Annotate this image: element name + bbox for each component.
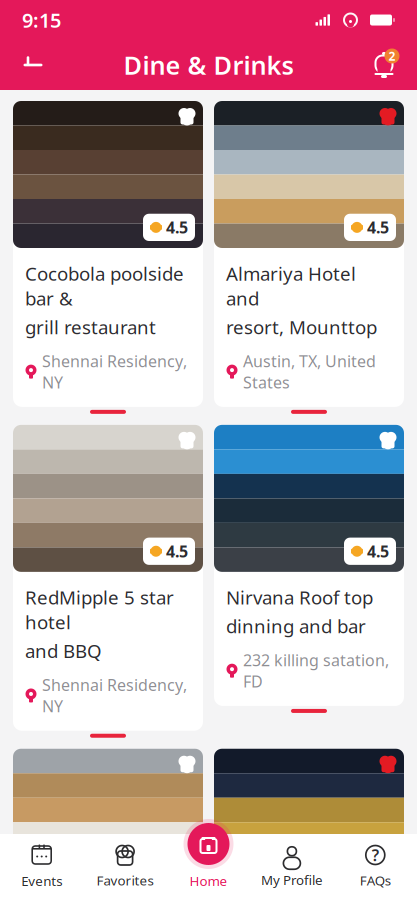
staticText: 2: [388, 48, 395, 64]
staticText: Dine & Drinks: [123, 48, 293, 82]
staticText: 9:15: [22, 7, 61, 33]
staticText: 232 killing satation, FD: [243, 649, 389, 692]
button[interactable]: Add to favorites: [171, 101, 203, 132]
staticText: Shennai Residency, NY: [42, 350, 187, 393]
staticText: Events: [21, 872, 62, 890]
staticText: and BBQ: [25, 638, 102, 663]
button[interactable]: Favorites: [83, 834, 167, 899]
staticText: resort, Mounttop: [226, 315, 377, 339]
staticText: Favorites: [97, 871, 154, 889]
staticText: FAQs: [360, 871, 391, 889]
button[interactable]: Home: [183, 819, 233, 869]
button[interactable]: Add to favorites: [171, 425, 203, 456]
button[interactable]: Add to favorites: [171, 749, 203, 780]
button[interactable]: 4.5: [13, 749, 203, 900]
button[interactable]: 4.5: [214, 749, 404, 900]
button[interactable]: Back: [16, 50, 50, 80]
button[interactable]: 4.5: [214, 101, 404, 407]
staticText: Austin, TX, United States: [243, 350, 376, 393]
button[interactable]: My Profile: [250, 835, 334, 899]
staticText: 4.5: [367, 217, 389, 238]
staticText: 4.5: [166, 541, 188, 562]
button[interactable]: 4.5: [13, 425, 203, 731]
staticText: Cocobola poolside bar &: [25, 261, 184, 311]
staticText: Nirvana Roof top: [226, 585, 373, 610]
staticText: dinning and bar: [226, 614, 366, 638]
button[interactable]: Remove from favorites: [372, 749, 404, 780]
button[interactable]: Notifications, 2 unread: [367, 49, 401, 81]
staticText: RedMipple 5 star hotel: [25, 585, 174, 634]
staticText: 4.5: [166, 217, 188, 238]
button[interactable]: 4.5: [214, 425, 404, 706]
button[interactable]: Add to favorites: [372, 425, 404, 456]
button[interactable]: 4.5: [13, 101, 203, 407]
staticText: Shennai Residency, NY: [42, 674, 187, 717]
staticText: ?: [372, 844, 379, 866]
button[interactable]: Events: [0, 834, 83, 900]
staticText: Almariya Hotel and: [226, 261, 356, 311]
staticText: My Profile: [261, 871, 323, 889]
button[interactable]: ?: [334, 834, 417, 899]
staticText: 4.5: [367, 541, 389, 562]
staticText: grill restaurant: [25, 315, 156, 339]
staticText: Home: [189, 872, 227, 890]
button[interactable]: Remove from favorites: [372, 101, 404, 132]
staticText: 4.5: [367, 864, 389, 886]
